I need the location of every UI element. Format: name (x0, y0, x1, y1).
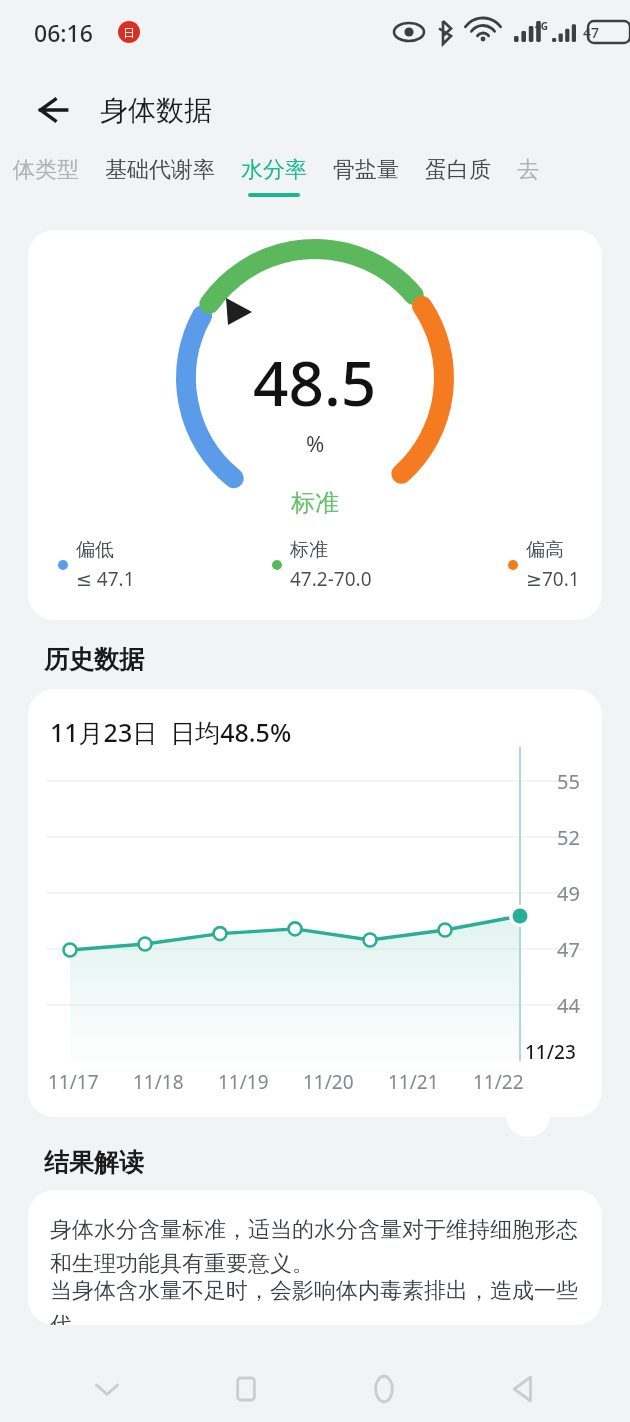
button[interactable]: Hide keyboard (76, 1358, 138, 1420)
staticText: 去 (517, 156, 539, 184)
staticText: 11/20 (303, 1069, 354, 1095)
staticText: 47.2-70.0 (290, 566, 372, 592)
button[interactable]: 身体水分含量标准，适当的水分含量对于维持细胞形态和生理功能具有重要意义。 (28, 1190, 602, 1325)
staticText: 体类型 (13, 156, 79, 184)
staticText: 44 (557, 992, 580, 1019)
staticText: 11/18 (133, 1069, 184, 1095)
button[interactable]: Expand chart (506, 1093, 550, 1137)
staticText: 11/19 (218, 1069, 269, 1095)
staticText: 偏高 (526, 538, 564, 562)
staticText: % (306, 428, 325, 458)
staticText: 47 (583, 23, 600, 42)
staticText: 11/23 (525, 1039, 576, 1065)
staticText: 标准 (291, 488, 339, 518)
staticText: 骨盐量 (333, 156, 399, 184)
staticText: 11/17 (48, 1069, 99, 1095)
staticText: 基础代谢率 (105, 156, 215, 184)
button[interactable]: Back (26, 84, 78, 136)
staticText: 11/22 (473, 1069, 524, 1095)
staticText: 11/21 (388, 1069, 439, 1095)
button[interactable]: 骨盐量 (320, 156, 412, 184)
staticText: 结果解读 (44, 1147, 144, 1178)
button[interactable]: 去 (504, 156, 552, 184)
button[interactable]: Back (492, 1358, 554, 1420)
button[interactable]: 蛋白质 (412, 156, 504, 184)
button[interactable]: 水分率 (228, 156, 320, 197)
button[interactable]: Recents (215, 1358, 277, 1420)
button[interactable]: Home (353, 1358, 415, 1420)
staticText: 4G (535, 19, 548, 33)
staticText: 身体数据 (100, 93, 212, 128)
staticText: 48.5 (253, 340, 377, 424)
staticText: 偏低 (76, 538, 114, 562)
staticText: ≤ 47.1 (76, 566, 135, 592)
staticText: 蛋白质 (425, 156, 491, 184)
button[interactable]: 48.5 (28, 230, 602, 620)
staticText: 标准 (290, 538, 328, 562)
button[interactable]: 基础代谢率 (92, 156, 228, 184)
staticText: 49 (557, 880, 580, 907)
button[interactable]: 体类型 (0, 156, 92, 184)
staticText: 历史数据 (44, 644, 144, 675)
staticText: 11月23日 日均48.5% (50, 715, 292, 749)
staticText: 当身体含水量不足时，会影响体内毒素排出，造成一些代 (50, 1277, 584, 1325)
staticText: 55 (557, 768, 580, 795)
button[interactable]: 11月23日 日均48.5% (28, 689, 602, 1117)
staticText: 日 (123, 25, 135, 40)
staticText: 52 (557, 824, 580, 851)
staticText: 06:16 (34, 17, 93, 48)
staticText: 身体水分含量标准，适当的水分含量对于维持细胞形态和生理功能具有重要意义。 (50, 1216, 584, 1277)
staticText: ≥70.1 (526, 566, 580, 592)
staticText: 47 (557, 936, 580, 963)
staticText: 水分率 (241, 156, 307, 184)
